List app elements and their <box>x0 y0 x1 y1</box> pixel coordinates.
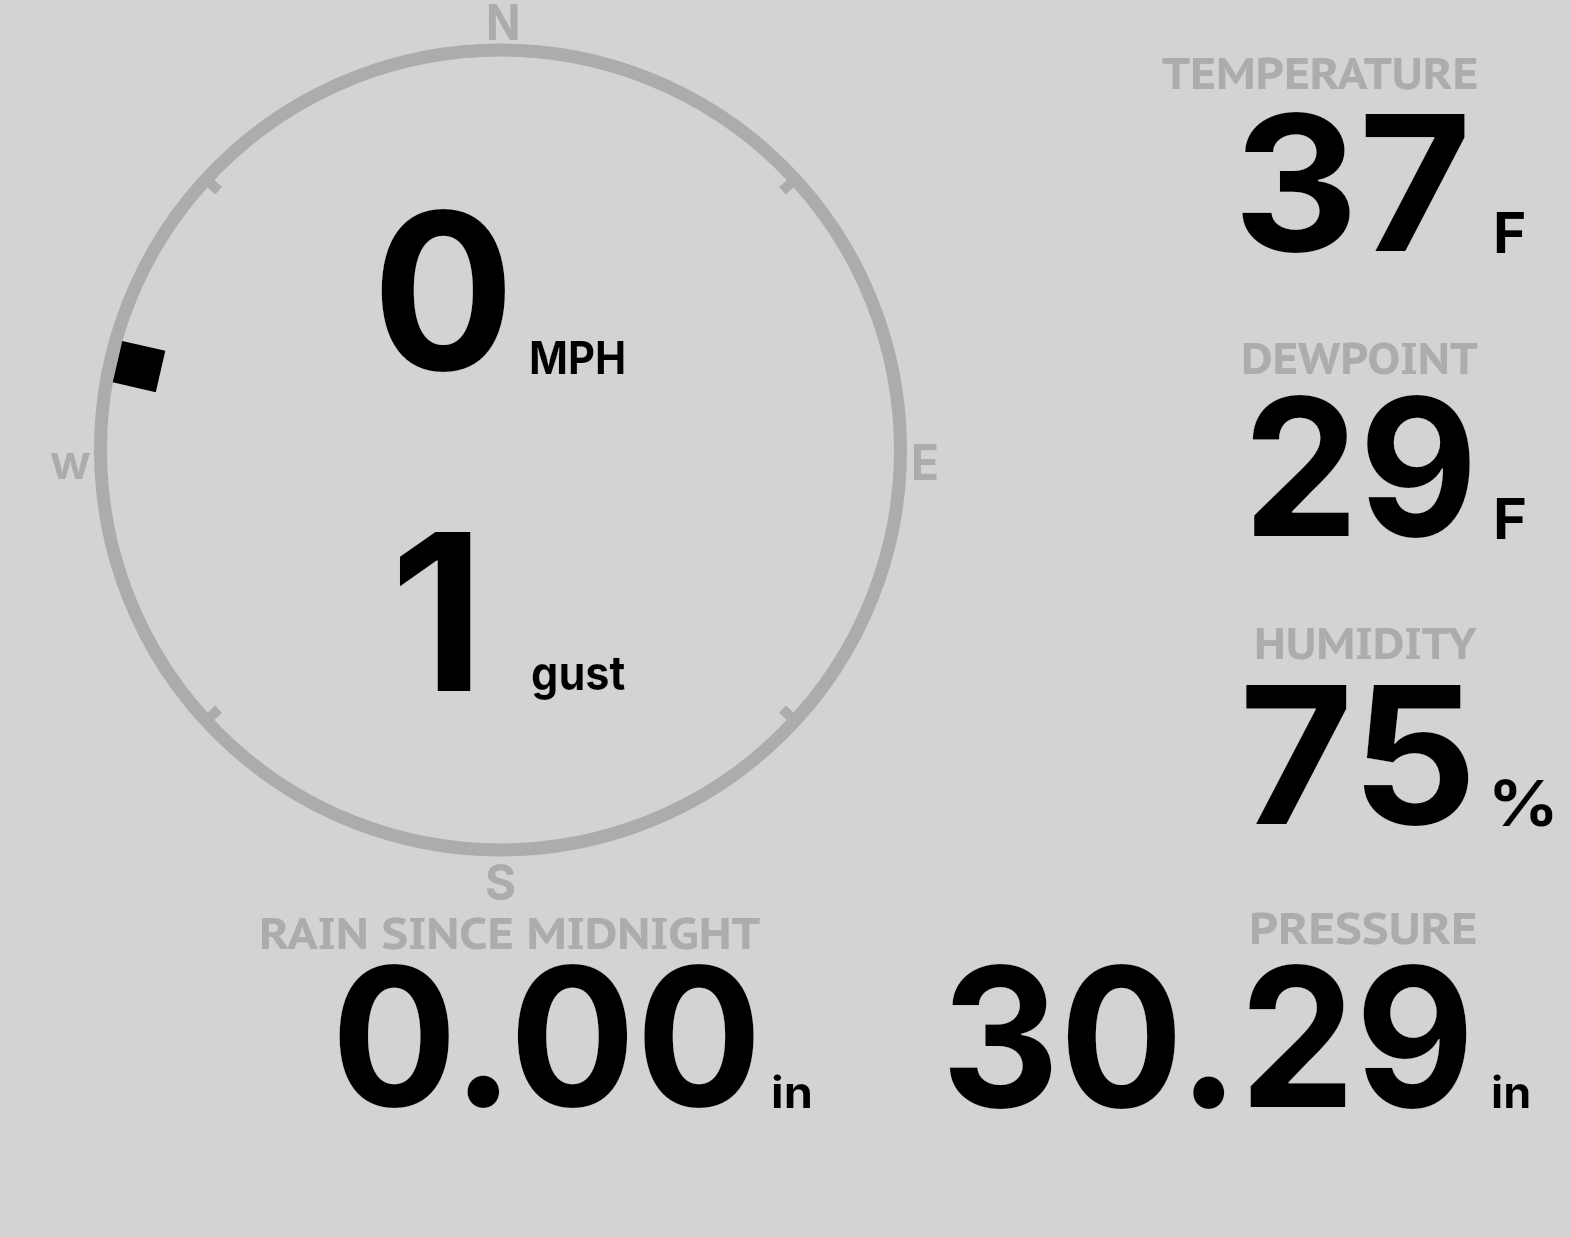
button[interactable]: Dewpoint 29 F <box>1020 315 1571 575</box>
staticText: in <box>771 1065 813 1119</box>
staticText: F <box>1493 484 1528 552</box>
button[interactable]: Temperature 37 F <box>1020 30 1571 290</box>
button[interactable]: Humidity 75 percent <box>1020 600 1571 860</box>
staticText: S <box>485 852 516 912</box>
staticText: gust <box>531 645 626 702</box>
staticText: 30.29 <box>941 919 1475 1154</box>
staticText: F <box>1493 198 1527 266</box>
staticText: in <box>1491 1065 1532 1119</box>
staticText: 0.00 <box>331 919 763 1152</box>
staticText: 1 <box>390 479 486 743</box>
button[interactable]: Wind direction dial <box>0 0 1010 920</box>
staticText: 29 <box>1243 351 1478 582</box>
staticText: 37 <box>1233 69 1472 296</box>
staticText: PRESSURE <box>1249 899 1477 956</box>
staticText: DEWPOINT <box>1241 330 1478 387</box>
button[interactable]: Rain since midnight 0.00 inches <box>60 885 860 1135</box>
staticText: % <box>1488 765 1560 841</box>
button[interactable]: Pressure 30.29 inches <box>880 885 1571 1135</box>
staticText: TEMPERATURE <box>1162 44 1479 101</box>
staticText: N <box>486 0 521 52</box>
staticText: 0 <box>372 159 516 423</box>
staticText: 75 <box>1239 638 1478 870</box>
staticText: HUMIDITY <box>1254 614 1477 671</box>
staticText: MPH <box>529 330 627 385</box>
staticText: E <box>911 432 940 492</box>
staticText: W <box>50 444 91 488</box>
staticText: RAIN SINCE MIDNIGHT <box>259 904 760 961</box>
